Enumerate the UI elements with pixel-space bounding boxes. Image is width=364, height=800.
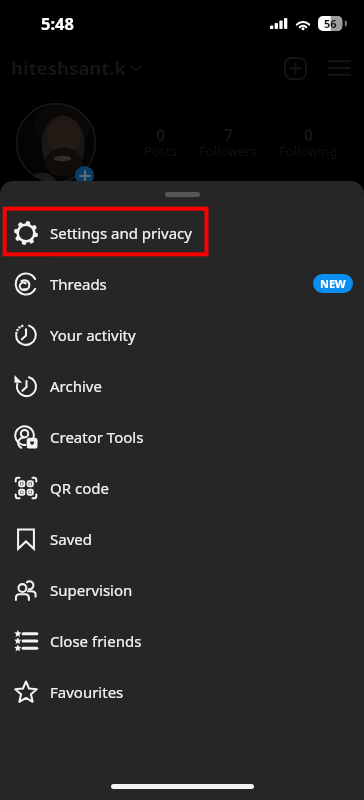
button[interactable]: Close friends	[0, 615, 364, 666]
button[interactable]: Menu	[322, 51, 356, 85]
button[interactable]: Saved	[0, 513, 364, 564]
staticText: 0	[304, 124, 314, 146]
button[interactable]: Supervision	[0, 564, 364, 615]
staticText: Supervision	[50, 580, 133, 600]
button[interactable]: Archive	[0, 360, 364, 411]
staticText: Settings and privacy	[50, 223, 192, 243]
staticText: Following	[279, 142, 338, 160]
button[interactable]: New post	[278, 51, 312, 85]
button[interactable]: Settings and privacy	[0, 207, 364, 258]
button[interactable]: Your activity	[0, 309, 364, 360]
staticText: Creator Tools	[50, 427, 144, 447]
staticText: NEW	[320, 276, 346, 291]
staticText: Archive	[50, 376, 102, 396]
staticText: Posts	[144, 142, 177, 160]
staticText: Favourites	[50, 682, 124, 702]
staticText: hiteshsant.k	[11, 55, 127, 80]
button[interactable]: Creator Tools	[0, 411, 364, 462]
button[interactable]: Threads	[0, 258, 364, 309]
button[interactable]: QR code	[0, 462, 364, 513]
staticText: QR code	[50, 478, 109, 498]
button[interactable]: hiteshsant.k	[9, 50, 144, 85]
staticText: 7	[224, 124, 234, 146]
staticText: Close friends	[50, 631, 142, 651]
staticText: 5:48	[41, 12, 74, 34]
staticText: Your activity	[50, 325, 136, 345]
button[interactable]: Profile photo	[16, 103, 96, 183]
staticText: Followers	[199, 142, 258, 160]
staticText: 56	[324, 16, 337, 31]
staticText: 0	[156, 124, 166, 146]
staticText: Threads	[50, 274, 107, 294]
staticText: Saved	[50, 529, 92, 549]
button[interactable]: Favourites	[0, 666, 364, 717]
